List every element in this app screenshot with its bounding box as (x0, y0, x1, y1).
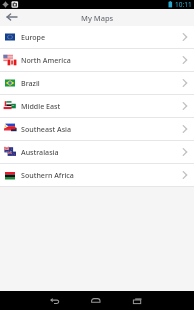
staticText: Australasia (21, 147, 59, 157)
button[interactable]: Middle East (0, 95, 194, 117)
button[interactable]: Back (41, 291, 69, 310)
button[interactable]: North America (0, 49, 194, 71)
staticText: Southern Africa (21, 170, 74, 180)
button[interactable]: Southern Africa (0, 164, 194, 186)
button[interactable]: Home (82, 291, 110, 310)
staticText: North America (21, 55, 71, 65)
staticText: My Maps (81, 13, 114, 23)
button[interactable]: Brazil (0, 72, 194, 94)
staticText: Europe (21, 32, 46, 42)
button[interactable]: Back (0, 9, 24, 26)
button[interactable]: Southeast Asia (0, 118, 194, 140)
staticText: Southeast Asia (21, 124, 72, 134)
button[interactable]: Recent apps (123, 291, 151, 310)
button[interactable]: Australasia (0, 141, 194, 163)
staticText: Middle East (21, 101, 61, 111)
staticText: 10:11 (175, 0, 192, 9)
button[interactable]: Europe (0, 26, 194, 48)
staticText: Brazil (21, 78, 40, 88)
